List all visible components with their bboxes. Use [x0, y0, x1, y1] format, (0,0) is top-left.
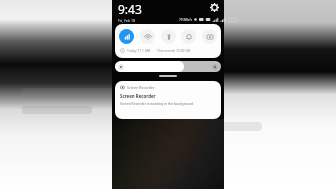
button[interactable]: Screen recorder: [202, 29, 217, 44]
staticText: Today 71.1 MB: [127, 48, 151, 53]
button[interactable]: Settings: [210, 3, 219, 12]
button[interactable]: Wi-Fi: [140, 29, 155, 44]
button[interactable]: Drag handle: [159, 75, 177, 77]
button[interactable]: Mobile data: [119, 29, 134, 44]
staticText: Screen Recorder: [120, 93, 156, 99]
button[interactable]: Brightness: [115, 61, 221, 72]
staticText: Screen Recorder is working in the backgr…: [120, 101, 194, 106]
staticText: Fri, Feb 18: [118, 18, 136, 23]
staticText: This month 10.89 GB: [157, 48, 191, 53]
button[interactable]: Flashlight: [161, 29, 176, 44]
staticText: 79.9Kb/s: [179, 18, 192, 22]
button[interactable]: Screen Recorder: [115, 81, 221, 119]
staticText: Screen Recorder: [127, 85, 155, 90]
staticText: 9:43: [118, 1, 142, 17]
button[interactable]: Ring mode: [181, 29, 196, 44]
